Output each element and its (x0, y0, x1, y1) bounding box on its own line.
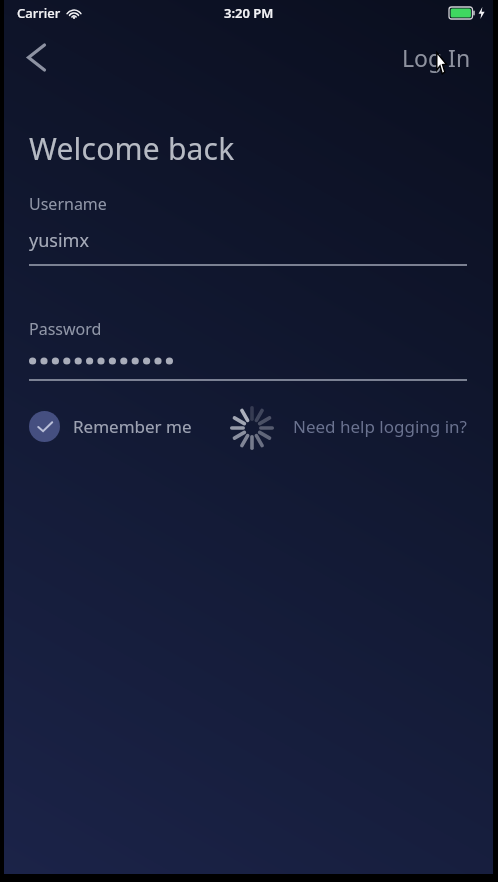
staticText: Welcome back (29, 128, 235, 169)
other: Loading (230, 406, 274, 450)
staticText: yusimx (29, 228, 89, 253)
staticText: Carrier (17, 4, 61, 22)
staticText: Password (29, 318, 102, 340)
staticText: Need help logging in? (293, 415, 467, 438)
staticText: 3:20 PM (224, 4, 274, 22)
staticText: Remember me (73, 415, 192, 438)
button[interactable]: Remember me (29, 411, 192, 442)
button[interactable]: Need help logging in? (293, 409, 493, 444)
staticText: Log In (402, 42, 471, 73)
button[interactable]: Log In (380, 32, 493, 83)
staticText: Username (29, 193, 107, 215)
button[interactable]: Back (12, 33, 60, 81)
